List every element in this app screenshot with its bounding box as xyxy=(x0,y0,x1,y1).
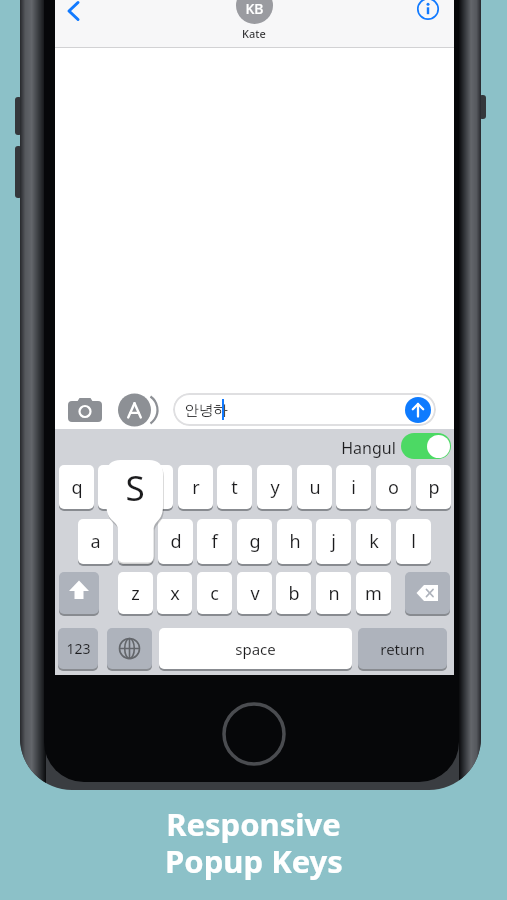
button[interactable]: r xyxy=(178,465,213,509)
button[interactable]: v xyxy=(237,572,272,614)
button[interactable]: i xyxy=(336,465,371,509)
staticText: n xyxy=(328,581,340,606)
button[interactable]: g xyxy=(237,519,272,564)
staticText: KB xyxy=(245,0,264,18)
button[interactable]: j xyxy=(316,519,351,564)
staticText: Popup Keys xyxy=(165,840,343,882)
button[interactable] xyxy=(65,1,83,21)
button[interactable]: s xyxy=(118,519,153,564)
button[interactable] xyxy=(405,572,450,614)
button[interactable] xyxy=(107,628,152,669)
button[interactable]: x xyxy=(157,572,192,614)
staticText: 123 xyxy=(66,639,91,658)
button[interactable]: w xyxy=(98,465,133,509)
staticText: o xyxy=(388,475,399,500)
staticText: m xyxy=(365,581,382,606)
staticText: h xyxy=(289,529,301,554)
button[interactable]: d xyxy=(158,519,193,564)
button[interactable]: a xyxy=(78,519,113,564)
staticText: x xyxy=(170,581,180,606)
button[interactable]: b xyxy=(276,572,311,614)
button[interactable]: return xyxy=(358,628,447,669)
button[interactable]: m xyxy=(356,572,391,614)
button[interactable] xyxy=(59,572,99,614)
button[interactable]: 123 xyxy=(58,628,98,669)
staticText: z xyxy=(131,581,140,606)
staticText: j xyxy=(331,529,336,554)
staticText: y xyxy=(270,475,280,500)
staticText: c xyxy=(210,581,219,606)
staticText: d xyxy=(170,529,182,554)
staticText: Hangul xyxy=(341,437,396,459)
staticText: S xyxy=(125,464,145,508)
button[interactable]: f xyxy=(197,519,232,564)
staticText: Kate xyxy=(242,26,266,41)
button[interactable]: c xyxy=(197,572,232,614)
staticText: Responsive xyxy=(166,803,341,845)
button[interactable] xyxy=(65,395,107,425)
button[interactable]: u xyxy=(297,465,332,509)
staticText: p xyxy=(428,475,440,500)
staticText: q xyxy=(71,475,83,500)
staticText: return xyxy=(380,639,425,659)
button[interactable] xyxy=(401,433,451,459)
button[interactable]: k xyxy=(356,519,391,564)
staticText: i xyxy=(351,475,356,500)
button[interactable] xyxy=(405,397,431,423)
staticText: f xyxy=(211,529,218,554)
button[interactable]: n xyxy=(316,572,351,614)
button[interactable]: p xyxy=(416,465,451,509)
button[interactable] xyxy=(115,391,157,429)
staticText: b xyxy=(288,581,300,606)
staticText: 안녕하 xyxy=(184,401,228,419)
button[interactable] xyxy=(417,0,439,20)
staticText: v xyxy=(250,581,260,606)
button[interactable]: t xyxy=(217,465,252,509)
staticText: k xyxy=(369,529,379,554)
staticText: a xyxy=(90,529,101,554)
staticText: l xyxy=(411,529,416,554)
staticText: g xyxy=(249,529,261,554)
staticText: r xyxy=(192,475,200,500)
button[interactable]: l xyxy=(396,519,431,564)
staticText: t xyxy=(231,475,238,500)
button[interactable]: q xyxy=(59,465,94,509)
button[interactable]: z xyxy=(118,572,153,614)
staticText: space xyxy=(235,639,276,659)
button[interactable]: h xyxy=(277,519,312,564)
staticText: u xyxy=(309,475,321,500)
button[interactable]: e xyxy=(138,465,173,509)
button[interactable]: y xyxy=(257,465,292,509)
button[interactable]: o xyxy=(376,465,411,509)
button[interactable]: space xyxy=(159,628,352,669)
